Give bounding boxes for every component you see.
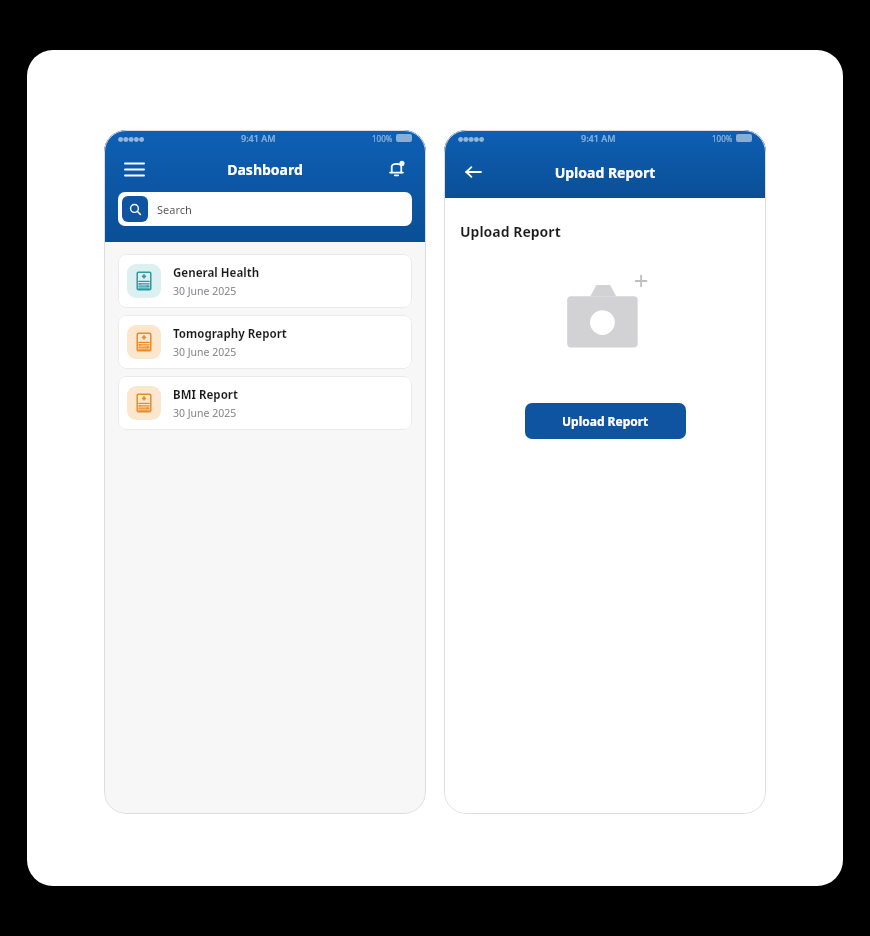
staticText: Search <box>157 202 192 217</box>
staticText: Upload Report <box>488 163 722 182</box>
button[interactable]: Upload Report <box>525 403 686 439</box>
button[interactable]: Tomography Report <box>118 315 412 369</box>
button[interactable]: Menu <box>118 153 150 185</box>
staticText: 30 June 2025 <box>173 406 237 420</box>
staticText: ●●●●● <box>458 135 485 142</box>
staticText: 30 June 2025 <box>173 284 237 298</box>
staticText: Upload Report <box>460 222 561 241</box>
button[interactable]: BMI Report <box>118 376 412 430</box>
staticText: General Health <box>173 265 260 281</box>
staticText: 30 June 2025 <box>173 345 237 359</box>
staticText: Upload Report <box>562 413 649 429</box>
staticText: ●●●●● <box>118 135 145 142</box>
button[interactable]: Add photo <box>444 267 766 359</box>
button[interactable]: General Health <box>118 254 412 308</box>
button[interactable]: Search <box>118 192 412 226</box>
staticText: Dashboard <box>150 160 380 179</box>
staticText: Tomography Report <box>173 326 287 342</box>
button[interactable]: Back <box>458 157 488 187</box>
staticText: 9:41 AM <box>581 132 616 144</box>
staticText: BMI Report <box>173 387 238 403</box>
staticText: 9:41 AM <box>241 132 276 144</box>
staticText: 100% <box>712 133 733 144</box>
staticText: 100% <box>372 133 393 144</box>
button[interactable]: Notifications <box>380 153 412 185</box>
